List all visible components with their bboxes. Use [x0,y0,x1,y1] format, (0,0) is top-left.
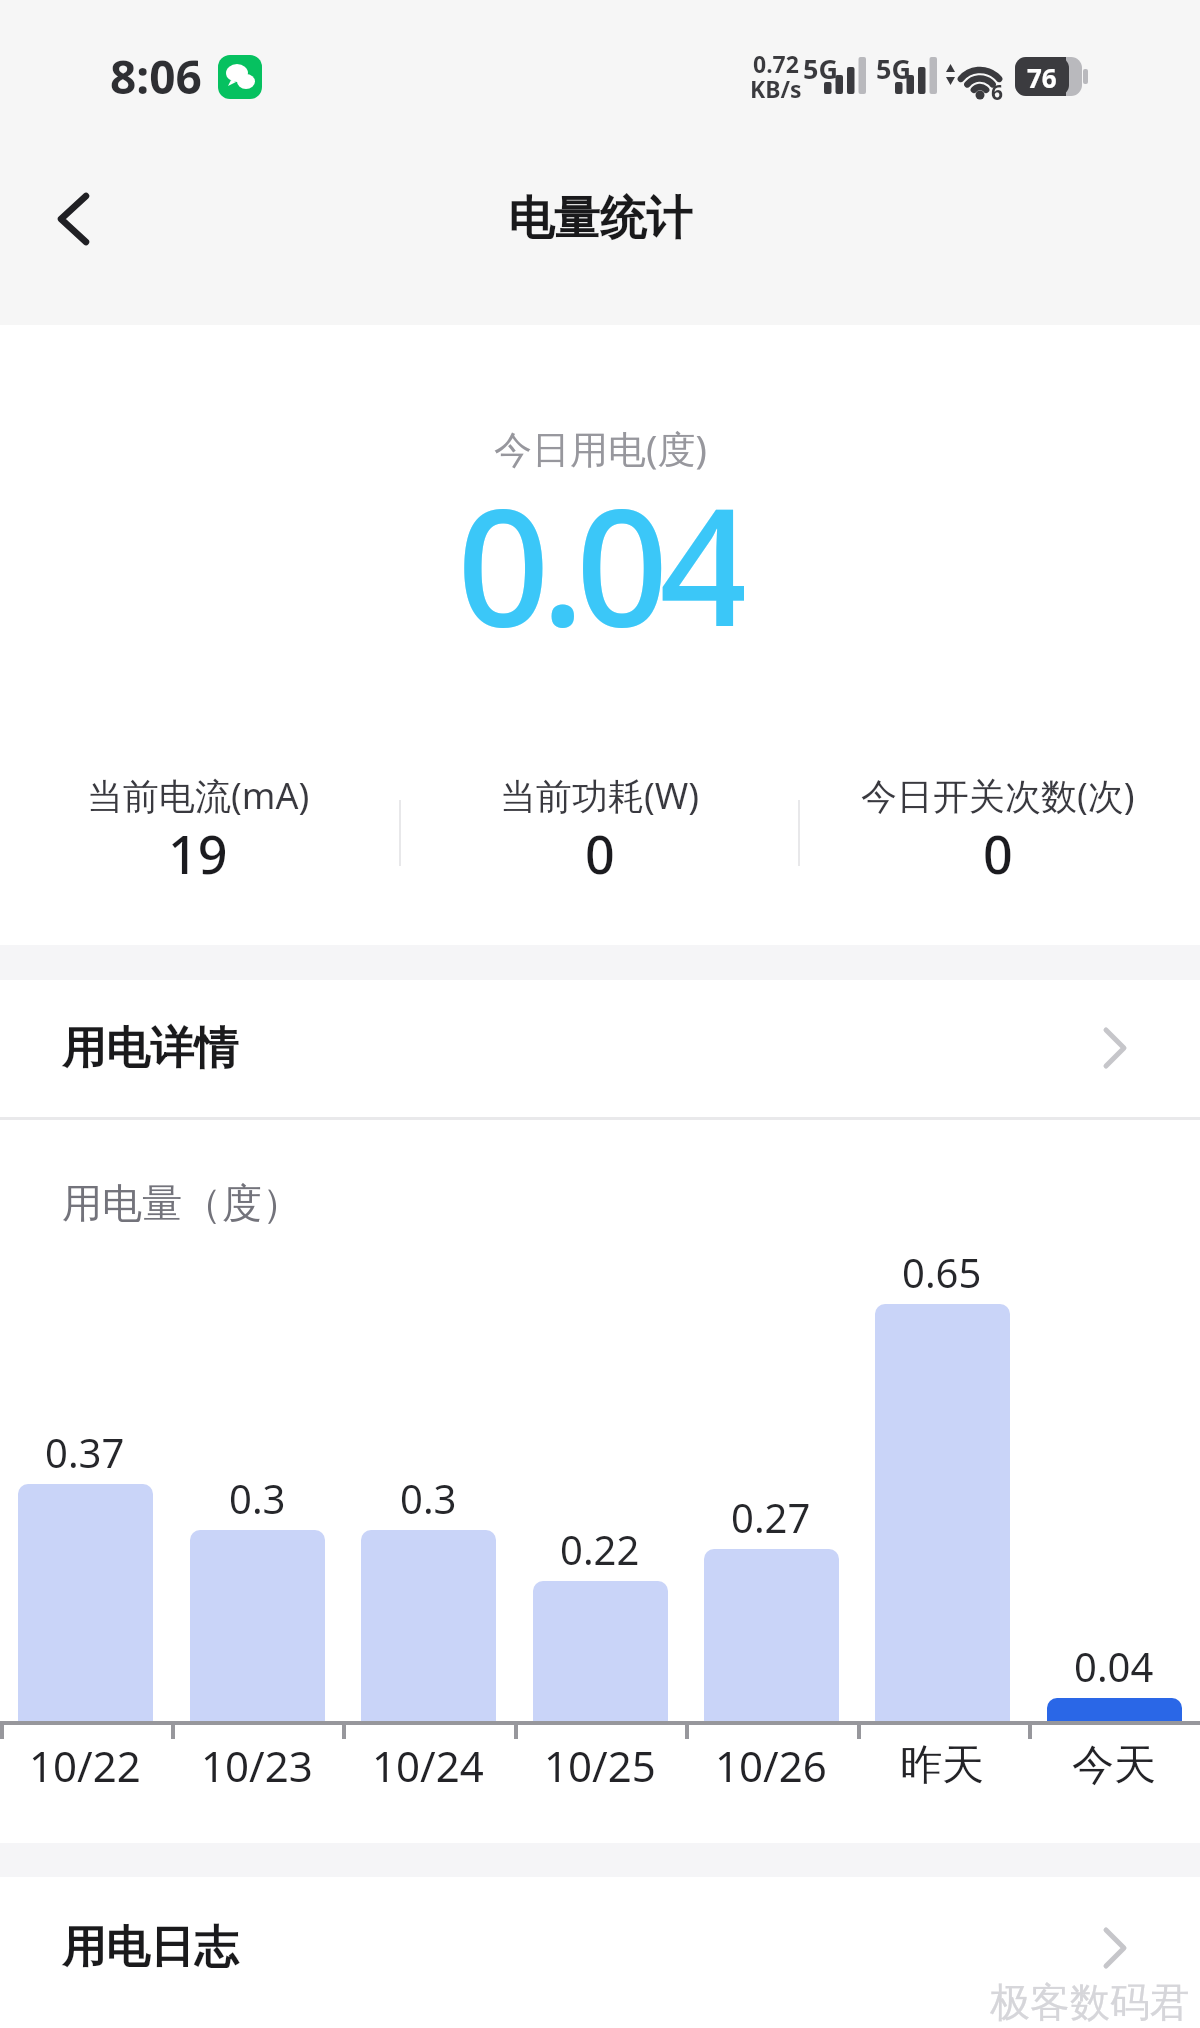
staticText: 10/23 [201,1737,313,1793]
staticText: 10/26 [715,1737,827,1793]
staticText: 0.3 [229,1471,286,1521]
staticText: 0.27 [731,1490,811,1540]
staticText: 今日用电(度) [494,422,707,474]
staticText: 0 [585,818,615,888]
staticText: 极客数码君 [990,1977,1190,2027]
staticText: 0.37 [45,1425,125,1475]
staticText: KB/s [750,73,802,103]
staticText: 0 [983,818,1013,888]
staticText: 0.65 [902,1245,982,1295]
staticText: 0.3 [400,1471,457,1521]
staticText: 10/24 [372,1737,484,1793]
staticText: 5G [803,50,838,80]
button[interactable]: 用电详情 [0,980,1200,1117]
staticText: 用电量（度） [62,1178,302,1228]
staticText: 6 [991,78,1004,102]
staticText: 10/22 [29,1737,141,1793]
staticText: 当前电流(mA) [87,771,310,820]
staticText: 昨天 [900,1739,984,1792]
button[interactable] [30,180,120,260]
staticText: 76 [1027,60,1057,94]
staticText: 当前功耗(W) [500,771,700,820]
staticText: 0.04 [1074,1639,1154,1689]
staticText: 0.72 [753,48,799,78]
staticText: 今日开关次数(次) [861,771,1135,820]
staticText: 电量统计 [508,190,692,248]
staticText: 8:06 [110,45,202,108]
button[interactable]: 用电日志 [0,1877,1200,2028]
staticText: 用电日志 [62,1920,238,1975]
staticText: 今天 [1072,1739,1156,1792]
staticText: 0.22 [560,1522,640,1572]
staticText: 19 [168,818,228,888]
staticText: 用电详情 [62,1021,238,1076]
staticText: 10/25 [544,1737,656,1793]
staticText: 5G [876,50,911,80]
staticText: 0.04 [457,453,744,663]
